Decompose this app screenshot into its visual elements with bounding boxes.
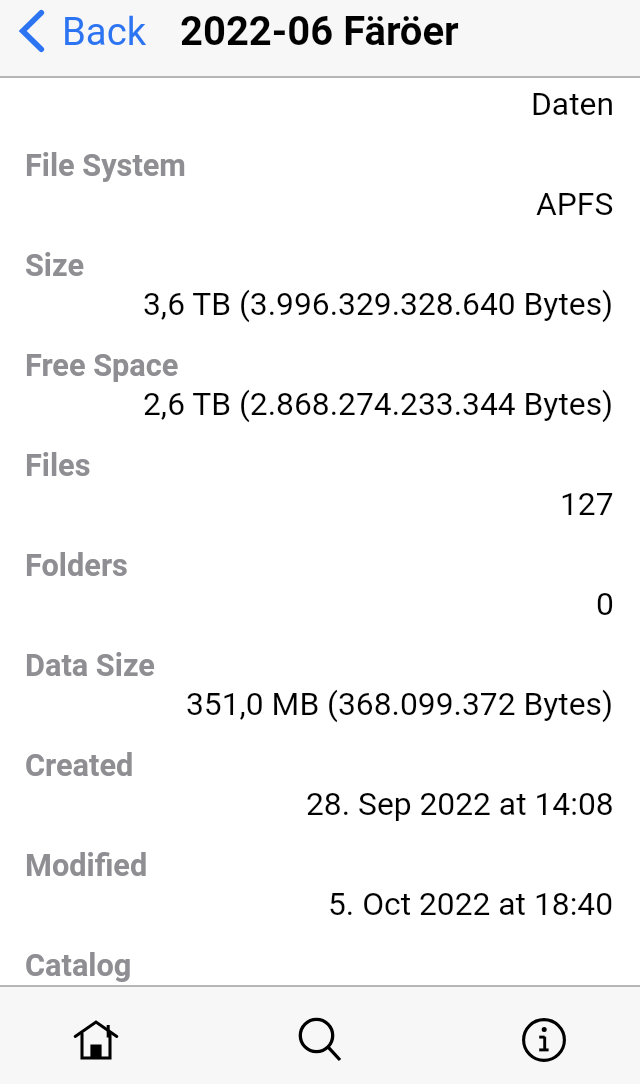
button[interactable]: Back [0, 3, 159, 59]
button[interactable]: Catalog [0, 947, 640, 985]
staticText: Files [25, 448, 91, 484]
button[interactable]: Size [0, 247, 640, 347]
button[interactable]: Files [0, 447, 640, 547]
button[interactable]: Folders [0, 547, 640, 647]
button[interactable]: Name [0, 86, 640, 147]
staticText: Free Space [25, 348, 179, 384]
staticText: Back [62, 9, 147, 54]
staticText: 127 [560, 485, 614, 522]
button[interactable]: Data Size [0, 647, 640, 747]
button[interactable]: Free Space [0, 347, 640, 447]
staticText: Daten [531, 86, 614, 122]
staticText: Modified [25, 848, 148, 884]
staticText: APFS [536, 185, 614, 222]
staticText: File System [25, 148, 186, 184]
staticText: 3,6 TB (3.996.329.328.640 Bytes) [143, 285, 614, 322]
staticText: Catalog [25, 948, 132, 984]
staticText: Size [25, 248, 84, 284]
staticText: 351,0 MB (368.099.372 Bytes) [186, 685, 614, 722]
button[interactable]: Info [496, 994, 592, 1084]
button[interactable]: Home [48, 994, 144, 1084]
staticText: 0 [596, 585, 614, 622]
button[interactable]: Created [0, 747, 640, 847]
button[interactable]: File System [0, 147, 640, 247]
staticText: Data Size [25, 648, 155, 684]
staticText: 2022-06 Färöer [180, 8, 459, 55]
button[interactable]: Search [272, 994, 368, 1084]
staticText: 5. Oct 2022 at 18:40 [328, 885, 614, 922]
button[interactable]: Modified [0, 847, 640, 947]
staticText: 28. Sep 2022 at 14:08 [306, 785, 614, 822]
staticText: 2,6 TB (2.868.274.233.344 Bytes) [143, 385, 614, 422]
staticText: Created [25, 748, 134, 784]
staticText: Folders [25, 548, 128, 584]
